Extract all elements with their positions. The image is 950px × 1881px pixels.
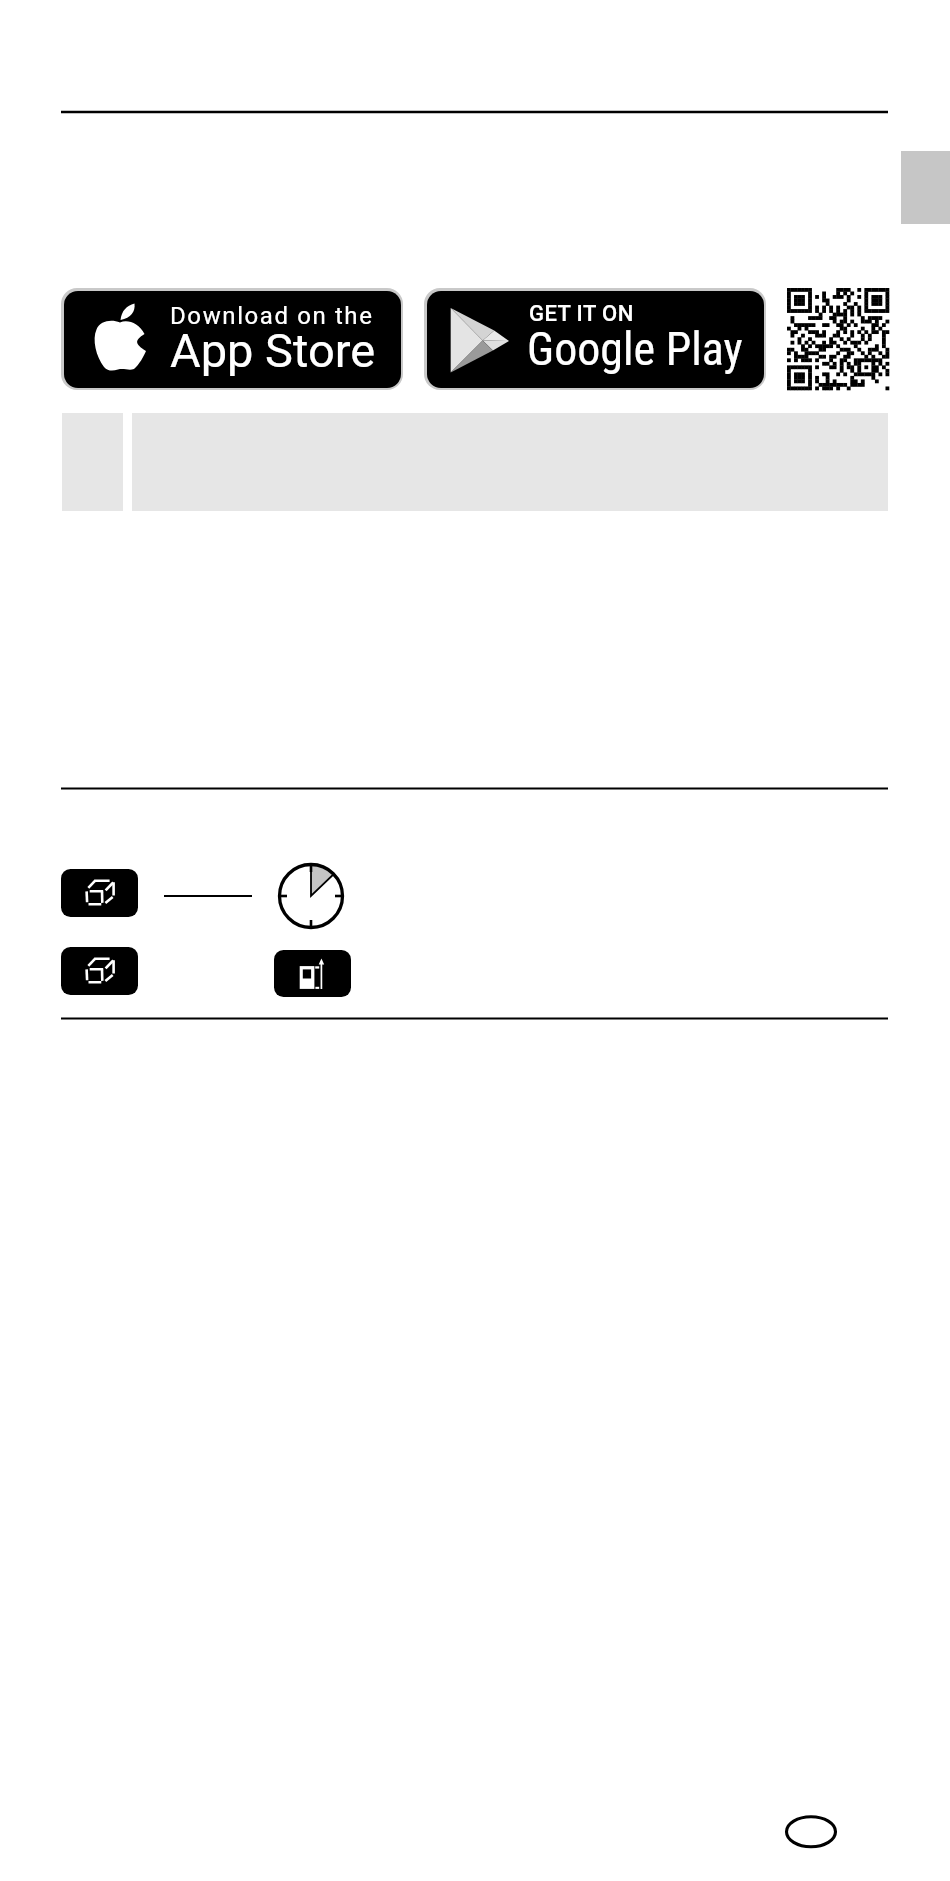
button[interactable]: Get it on Google Play bbox=[424, 288, 766, 390]
staticText: Download on the bbox=[170, 302, 374, 330]
button[interactable]: Download on the App Store bbox=[61, 288, 403, 390]
button[interactable]: 3D model viewer bbox=[61, 947, 138, 995]
button[interactable]: Measure height bbox=[274, 950, 351, 997]
staticText: App Store bbox=[170, 323, 376, 378]
button[interactable]: 3D model viewer bbox=[61, 869, 138, 917]
staticText: Google Play bbox=[527, 322, 743, 376]
button[interactable]: QR code bbox=[787, 288, 889, 390]
staticText: GET IT ON bbox=[529, 301, 634, 327]
